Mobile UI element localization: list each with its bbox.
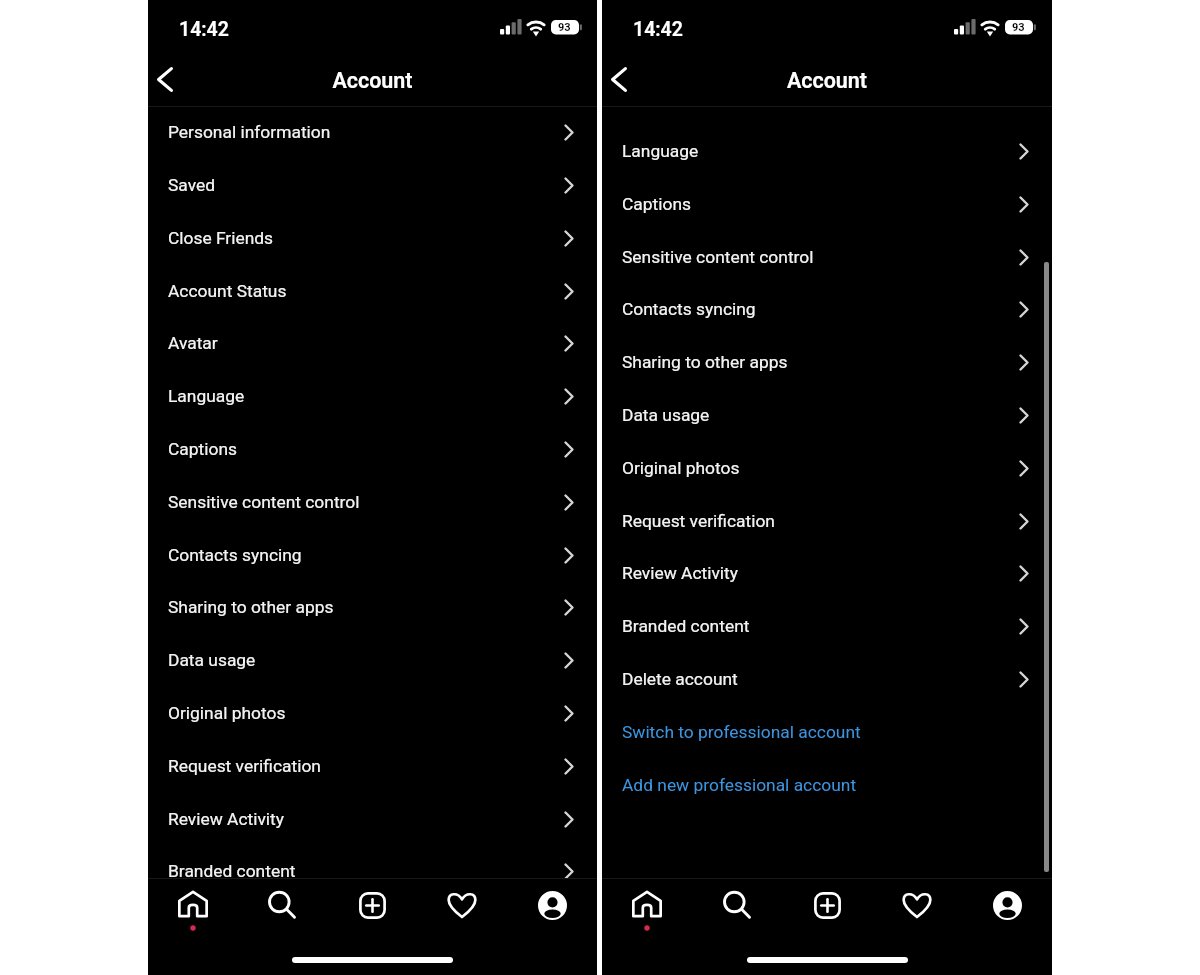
staticText: Sharing to other apps bbox=[622, 352, 788, 372]
staticText: Account Status bbox=[168, 281, 287, 301]
staticText: Review Activity bbox=[168, 809, 285, 829]
button[interactable]: Avatar bbox=[148, 317, 597, 369]
button[interactable]: Language bbox=[148, 370, 597, 422]
button[interactable]: Request verification bbox=[148, 740, 597, 792]
staticText: Language bbox=[622, 141, 699, 161]
staticText: 14:42 bbox=[179, 18, 229, 41]
staticText: 93 bbox=[1012, 21, 1025, 34]
staticText: Contacts syncing bbox=[168, 545, 302, 565]
button[interactable]: Add new professional account bbox=[602, 759, 1052, 811]
staticText: Original photos bbox=[168, 703, 286, 723]
button[interactable]: Switch to professional account bbox=[602, 706, 1052, 758]
button[interactable]: Sharing to other apps bbox=[148, 581, 597, 633]
button[interactable]: Captions bbox=[602, 178, 1052, 230]
staticText: Add new professional account bbox=[622, 775, 857, 795]
button[interactable]: Saved bbox=[148, 159, 597, 211]
button[interactable]: Delete account bbox=[602, 653, 1052, 705]
staticText: 93 bbox=[558, 21, 571, 34]
staticText: Request verification bbox=[622, 511, 775, 531]
button[interactable]: Captions bbox=[148, 423, 597, 475]
button[interactable]: Home bbox=[148, 879, 237, 931]
button[interactable]: Contacts syncing bbox=[602, 283, 1052, 335]
button[interactable]: Search bbox=[237, 879, 327, 931]
button[interactable]: Branded content bbox=[602, 600, 1052, 652]
staticText: Sharing to other apps bbox=[168, 597, 334, 617]
staticText: Delete account bbox=[622, 669, 738, 689]
button[interactable]: Close Friends bbox=[148, 212, 597, 264]
button[interactable]: Original photos bbox=[602, 442, 1052, 494]
button[interactable]: Back bbox=[148, 52, 192, 107]
button[interactable]: Language bbox=[602, 125, 1052, 177]
staticText: Request verification bbox=[168, 756, 321, 776]
button[interactable]: Branded content bbox=[148, 845, 597, 897]
staticText: Captions bbox=[622, 194, 691, 214]
button[interactable]: Review Activity bbox=[602, 547, 1052, 599]
staticText: Data usage bbox=[168, 650, 256, 670]
staticText: Review Activity bbox=[622, 563, 739, 583]
staticText: Sensitive content control bbox=[622, 247, 814, 267]
staticText: Branded content bbox=[168, 861, 296, 881]
button[interactable]: Sharing to other apps bbox=[602, 336, 1052, 388]
button[interactable]: Account Status bbox=[148, 265, 597, 317]
button[interactable]: Create bbox=[782, 879, 872, 931]
staticText: Contacts syncing bbox=[622, 299, 756, 319]
button[interactable]: Data usage bbox=[602, 389, 1052, 441]
staticText: Saved bbox=[168, 175, 216, 195]
staticText: Personal information bbox=[168, 122, 331, 142]
staticText: Original photos bbox=[622, 458, 740, 478]
staticText: Close Friends bbox=[168, 228, 274, 248]
staticText: Avatar bbox=[168, 333, 218, 353]
button[interactable]: Search bbox=[692, 879, 782, 931]
staticText: Captions bbox=[168, 439, 237, 459]
button[interactable]: Back bbox=[602, 52, 646, 107]
staticText: Account bbox=[148, 68, 597, 93]
staticText: Data usage bbox=[622, 405, 710, 425]
staticText: Language bbox=[168, 386, 245, 406]
button[interactable]: Create bbox=[327, 879, 417, 931]
button[interactable]: Sensitive content control bbox=[602, 231, 1052, 283]
button[interactable]: Activity bbox=[417, 879, 507, 931]
staticText: Sensitive content control bbox=[168, 492, 360, 512]
button[interactable]: Review Activity bbox=[148, 793, 597, 845]
button[interactable]: Profile bbox=[507, 879, 597, 931]
button[interactable]: Sensitive content control bbox=[148, 476, 597, 528]
button[interactable]: Profile bbox=[962, 879, 1052, 931]
button[interactable]: Contacts syncing bbox=[148, 529, 597, 581]
staticText: Account bbox=[602, 68, 1052, 93]
staticText: Branded content bbox=[622, 616, 750, 636]
button[interactable]: Personal information bbox=[148, 106, 597, 158]
button[interactable]: Original photos bbox=[148, 687, 597, 739]
button[interactable]: Activity bbox=[872, 879, 962, 931]
button[interactable]: Data usage bbox=[148, 634, 597, 686]
button[interactable]: Home bbox=[602, 879, 692, 931]
button[interactable]: Request verification bbox=[602, 495, 1052, 547]
staticText: Switch to professional account bbox=[622, 722, 861, 742]
staticText: 14:42 bbox=[633, 18, 683, 41]
